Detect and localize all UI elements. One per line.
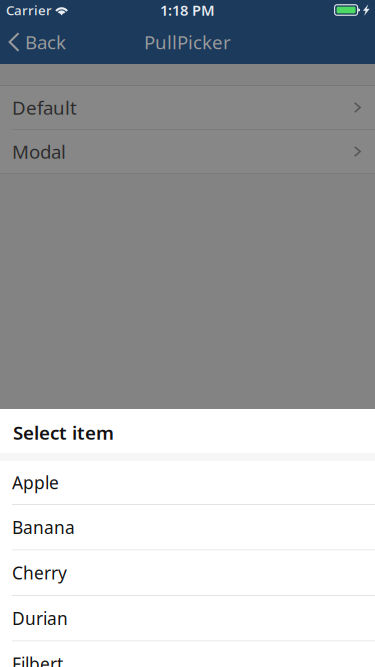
staticText: Banana [12, 516, 75, 539]
staticText: PullPicker [144, 30, 231, 54]
staticText: Modal [12, 139, 66, 164]
button[interactable]: Filbert [0, 641, 375, 667]
staticText: Durian [12, 607, 68, 630]
button[interactable]: Modal [0, 130, 375, 174]
button[interactable]: Cherry [0, 550, 375, 596]
button[interactable]: Default [0, 86, 375, 130]
staticText: Carrier [6, 1, 52, 19]
button[interactable]: Apple [0, 461, 375, 505]
button[interactable]: Back [0, 20, 76, 64]
staticText: Filbert [12, 652, 63, 667]
staticText: Select item [13, 420, 114, 445]
staticText: Default [12, 95, 77, 120]
staticText: Back [25, 30, 66, 54]
staticText: Cherry [12, 561, 67, 584]
staticText: 1:18 PM [160, 0, 215, 20]
button[interactable]: Banana [0, 505, 375, 550]
button[interactable]: Durian [0, 596, 375, 641]
staticText: Apple [12, 471, 59, 494]
